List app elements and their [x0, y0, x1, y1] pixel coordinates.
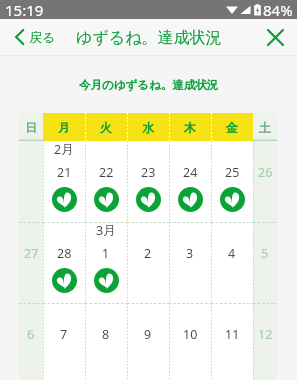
staticText: 火 [100, 120, 112, 135]
button[interactable]: 28 [43, 222, 85, 303]
staticText: 23 [141, 164, 156, 181]
button[interactable]: 22 [85, 141, 127, 222]
button[interactable]: 9 [127, 303, 169, 380]
staticText: 4 [228, 245, 236, 262]
staticText: 金 [226, 120, 238, 135]
button[interactable]: 26 [253, 141, 277, 222]
button[interactable]: 6 [19, 303, 43, 380]
staticText: 8 [102, 326, 110, 343]
button[interactable]: 金 [211, 113, 253, 141]
button[interactable]: 24 [169, 141, 211, 222]
button[interactable]: 水 [127, 113, 169, 141]
staticText: 戻る [29, 29, 56, 45]
staticText: 3月 [96, 222, 116, 239]
button[interactable]: 3 [169, 222, 211, 303]
button[interactable]: 23 [127, 141, 169, 222]
staticText: 21 [57, 164, 72, 181]
staticText: 9 [144, 326, 152, 343]
staticText: 木 [184, 120, 196, 135]
staticText: 11 [225, 326, 240, 343]
staticText: 今月のゆずるね。達成状況 [79, 78, 219, 92]
staticText: 26 [258, 164, 273, 181]
button[interactable]: 25 [211, 141, 253, 222]
staticText: 1 [102, 245, 110, 262]
staticText: 15:19 [5, 0, 44, 19]
staticText: 10 [183, 326, 198, 343]
button[interactable]: 7 [43, 303, 85, 380]
staticText: 5 [261, 245, 269, 262]
button[interactable]: 11 [211, 303, 253, 380]
button[interactable]: 日 [19, 113, 43, 141]
button[interactable]: 10 [169, 303, 211, 380]
staticText: 24 [183, 164, 198, 181]
button[interactable]: 火 [85, 113, 127, 141]
staticText: 25 [225, 164, 240, 181]
staticText: 22 [99, 164, 114, 181]
staticText: 2月 [54, 141, 74, 158]
button[interactable]: 土 [253, 113, 277, 141]
staticText: 日 [25, 120, 37, 135]
button[interactable]: 8 [85, 303, 127, 380]
staticText: 土 [259, 120, 271, 135]
staticText: 3 [186, 245, 194, 262]
staticText: 月 [58, 120, 70, 135]
button[interactable]: 12 [253, 303, 277, 380]
button[interactable]: 戻る [0, 23, 64, 51]
button[interactable]: 4 [211, 222, 253, 303]
button[interactable]: 3月 [85, 222, 127, 303]
button[interactable]: 木 [169, 113, 211, 141]
button[interactable]: 27 [19, 222, 43, 303]
staticText: 27 [24, 245, 39, 262]
staticText: 12 [258, 326, 273, 343]
staticText: 7 [60, 326, 68, 343]
staticText: ゆずるね。達成状況 [76, 28, 222, 48]
button[interactable]: 2月 [43, 141, 85, 222]
staticText: 84% [263, 0, 293, 19]
staticText: 水 [142, 120, 154, 135]
staticText: 28 [57, 245, 72, 262]
staticText: 6 [27, 326, 35, 343]
staticText: 2 [144, 245, 152, 262]
button[interactable]: 5 [253, 222, 277, 303]
button[interactable]: 2 [127, 222, 169, 303]
button[interactable]: Close [268, 30, 297, 45]
button[interactable]: 月 [43, 113, 85, 141]
